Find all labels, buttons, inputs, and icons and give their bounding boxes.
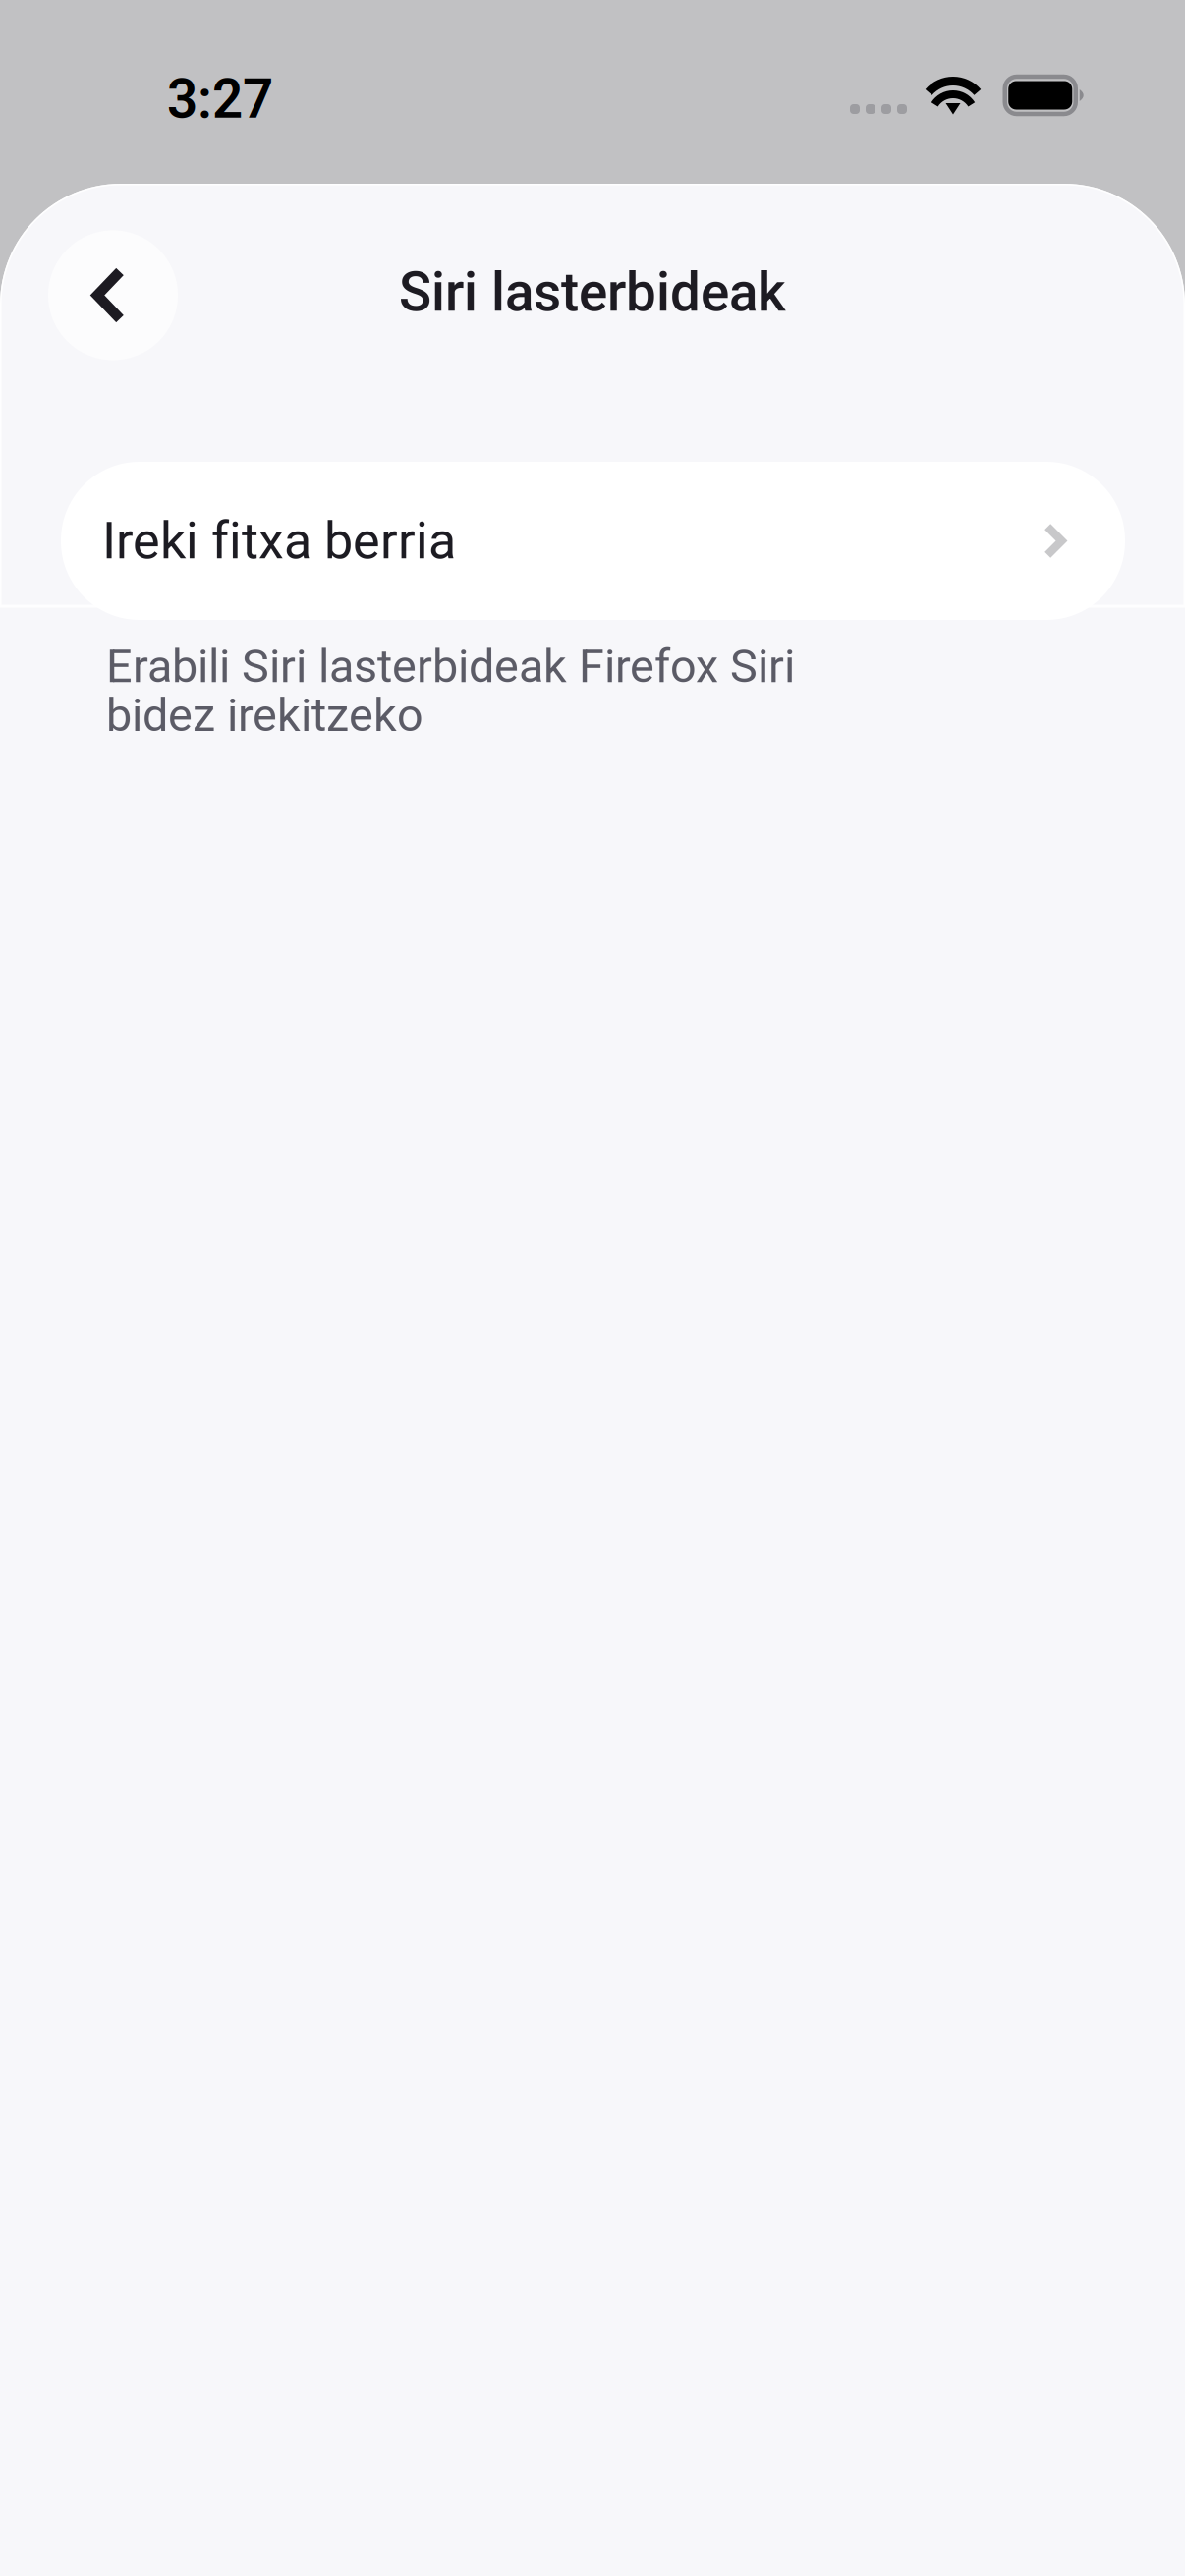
button[interactable]: Back (48, 230, 178, 360)
staticText: Erabili Siri lasterbideak Firefox Siri b… (106, 640, 795, 742)
staticText: 3:27 (167, 68, 273, 131)
staticText: Ireki fitxa berria (102, 511, 456, 571)
button[interactable]: Ireki fitxa berria (61, 462, 1125, 620)
staticText: Siri lasterbideak (399, 261, 786, 324)
